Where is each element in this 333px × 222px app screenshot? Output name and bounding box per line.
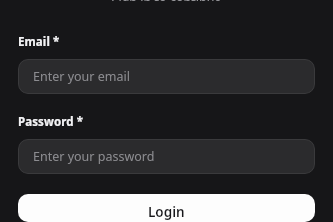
button[interactable]: Enter your password [18,139,315,174]
staticText: Login [148,203,185,221]
button[interactable]: Login [18,194,315,222]
staticText: Password * [18,114,84,130]
staticText: Email * [18,34,60,50]
button[interactable]: Enter your email [18,59,315,94]
staticText: Sign in to continue [18,0,315,1]
staticText: Enter your email [33,68,130,85]
staticText: Enter your password [33,148,155,165]
